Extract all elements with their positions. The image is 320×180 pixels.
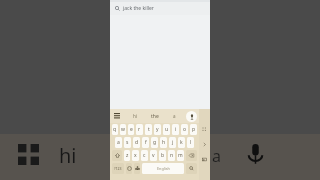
button[interactable]: r bbox=[136, 124, 143, 135]
button[interactable]: t bbox=[145, 124, 152, 135]
staticText: hi bbox=[133, 113, 137, 119]
button[interactable]: y bbox=[154, 124, 161, 135]
button[interactable]: d bbox=[133, 137, 140, 148]
button[interactable]: Shift bbox=[112, 150, 122, 161]
staticText: b bbox=[161, 152, 165, 159]
staticText: l bbox=[190, 139, 192, 146]
button[interactable]: ?123 bbox=[112, 163, 124, 174]
button[interactable]: s bbox=[124, 137, 131, 148]
button[interactable]: x bbox=[132, 150, 139, 161]
button[interactable]: Emoji bbox=[126, 163, 132, 174]
staticText: y bbox=[156, 126, 159, 133]
button[interactable]: Stickers bbox=[134, 163, 140, 174]
staticText: r bbox=[138, 126, 141, 133]
staticText: f bbox=[145, 139, 147, 146]
button[interactable]: Voice typing bbox=[186, 111, 197, 122]
staticText: a bbox=[212, 145, 221, 167]
button[interactable]: u bbox=[163, 124, 170, 135]
button[interactable]: k bbox=[178, 137, 185, 148]
button[interactable]: o bbox=[181, 124, 188, 135]
button[interactable]: g bbox=[151, 137, 158, 148]
button[interactable]: l bbox=[187, 137, 194, 148]
button[interactable]: z bbox=[124, 150, 130, 161]
button[interactable]: w bbox=[120, 124, 126, 135]
staticText: a bbox=[173, 113, 176, 119]
staticText: j bbox=[172, 139, 174, 146]
staticText: i bbox=[175, 126, 177, 133]
staticText: m bbox=[178, 152, 183, 159]
staticText: g bbox=[153, 139, 157, 146]
staticText: s bbox=[126, 139, 129, 146]
staticText: o bbox=[183, 126, 187, 133]
button[interactable]: b bbox=[159, 150, 166, 161]
staticText: q bbox=[113, 126, 117, 133]
staticText: t bbox=[148, 126, 150, 133]
button[interactable]: jack the killer bbox=[110, 2, 210, 15]
button[interactable]: Voice search bbox=[240, 139, 270, 169]
staticText: p bbox=[192, 126, 196, 133]
button[interactable]: Keyboard options bbox=[113, 112, 121, 120]
button[interactable]: f bbox=[142, 137, 149, 148]
button[interactable]: h bbox=[160, 137, 167, 148]
button[interactable]: i bbox=[172, 124, 179, 135]
button[interactable]: p bbox=[190, 124, 197, 135]
staticText: h bbox=[162, 139, 166, 146]
staticText: v bbox=[152, 152, 155, 159]
staticText: w bbox=[121, 126, 125, 133]
staticText: e bbox=[130, 126, 133, 133]
staticText: c bbox=[143, 152, 146, 159]
button[interactable]: j bbox=[169, 137, 176, 148]
staticText: a bbox=[117, 139, 120, 146]
staticText: z bbox=[126, 152, 129, 159]
staticText: x bbox=[134, 152, 137, 159]
staticText: d bbox=[135, 139, 139, 146]
button[interactable]: Search bbox=[186, 163, 197, 174]
button[interactable]: m bbox=[177, 150, 184, 161]
button[interactable]: e bbox=[128, 124, 134, 135]
staticText: ?123 bbox=[114, 166, 122, 171]
button[interactable]: Space bbox=[142, 163, 184, 174]
staticText: the bbox=[151, 113, 159, 120]
button[interactable]: a bbox=[115, 137, 122, 148]
button[interactable]: n bbox=[168, 150, 175, 161]
staticText: hi bbox=[59, 142, 77, 169]
staticText: k bbox=[180, 139, 183, 146]
button[interactable]: Next bbox=[200, 140, 209, 149]
button[interactable]: c bbox=[141, 150, 148, 161]
staticText: n bbox=[170, 152, 174, 159]
button[interactable]: Backspace bbox=[186, 150, 197, 161]
button[interactable]: q bbox=[112, 124, 118, 135]
button[interactable]: Switch layout bbox=[200, 125, 209, 134]
button[interactable]: Floating keyboard bbox=[200, 155, 209, 164]
button[interactable]: v bbox=[150, 150, 157, 161]
staticText: jack the killer bbox=[123, 5, 154, 12]
staticText: English bbox=[157, 166, 170, 171]
button[interactable]: All apps bbox=[15, 141, 41, 167]
staticText: u bbox=[165, 126, 169, 133]
